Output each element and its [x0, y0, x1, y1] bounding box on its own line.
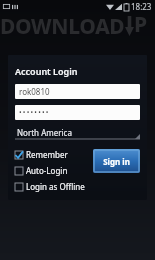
button[interactable]: Sign in	[93, 149, 140, 173]
staticText: Sign in	[103, 156, 130, 167]
button[interactable]: North America	[15, 125, 140, 144]
button[interactable]: Login as Offline	[15, 180, 85, 193]
staticText: Auto-Login	[26, 165, 68, 176]
staticText: PARK	[134, 10, 155, 42]
button[interactable]: rok0810	[15, 84, 140, 99]
staticText: 18:23	[131, 1, 152, 12]
staticText: rok0810	[19, 86, 50, 97]
staticText: ••••••••	[19, 108, 50, 118]
staticText: Login as Offline	[26, 181, 85, 192]
staticText: Account Login	[15, 65, 78, 77]
button[interactable]: Auto-Login	[15, 164, 68, 177]
staticText: DOWNLOAD	[0, 12, 125, 41]
button[interactable]: Remember	[15, 148, 68, 161]
staticText: North America	[17, 127, 72, 138]
staticText: Remember	[26, 149, 68, 160]
button[interactable]: ••••••••	[15, 105, 140, 120]
